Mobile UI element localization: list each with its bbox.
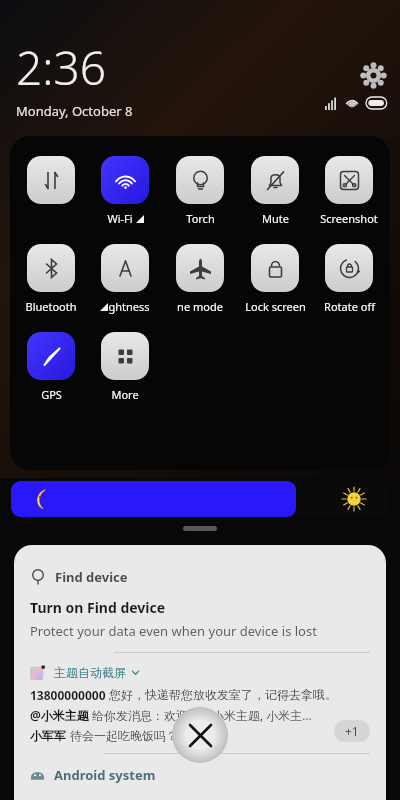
staticText: Turn on Find device <box>30 598 166 617</box>
staticText: 待会一起吃晚饭吗？ <box>70 728 178 743</box>
button[interactable]: Wi-Fi <box>101 156 149 204</box>
button[interactable]: 主题自动截屏 <box>30 665 370 680</box>
button[interactable]: Brightness <box>101 244 149 292</box>
staticText: Wi-Fi <box>107 211 133 226</box>
staticText: Rotate off <box>324 299 375 314</box>
staticText: Protect your data even when your device … <box>30 622 317 640</box>
staticText: 主题自动截屏 <box>54 665 126 680</box>
staticText: 小军军 <box>30 727 70 743</box>
staticText: 2:36 <box>16 36 107 99</box>
button[interactable]: Settings <box>358 60 388 90</box>
button[interactable]: Find device <box>30 568 370 586</box>
staticText: Mute <box>262 211 289 226</box>
staticText: Find device <box>55 568 128 586</box>
staticText: 您好，快递帮您放收发室了，记得去拿哦。 <box>109 687 337 702</box>
button[interactable]: More <box>101 332 149 380</box>
button[interactable]: Turn on Find device <box>30 598 370 640</box>
button[interactable]: Android system <box>30 766 370 784</box>
button[interactable]: Torch <box>176 156 224 204</box>
button[interactable]: Mobile data <box>27 156 75 204</box>
button[interactable]: Lock screen <box>251 244 299 292</box>
staticText: ghtness <box>108 299 150 314</box>
button[interactable]: +1 <box>334 720 370 742</box>
button[interactable]: Rotate off <box>325 244 373 292</box>
staticText: Torch <box>186 211 215 226</box>
staticText: Lock screen <box>245 299 306 314</box>
button[interactable]: Mute <box>251 156 299 204</box>
staticText: Monday, October 8 <box>16 102 133 120</box>
button[interactable]: Airplane mode <box>176 244 224 292</box>
staticText: 13800000000 <box>30 687 109 703</box>
button[interactable]: Bluetooth <box>27 244 75 292</box>
staticText: 给你发消息：欢迎关注小米主题, 小米主… <box>92 707 312 723</box>
staticText: @小米主题 <box>30 707 92 723</box>
staticText: +1 <box>345 723 359 739</box>
button[interactable]: GPS <box>27 332 75 380</box>
staticText: Screenshot <box>320 211 378 226</box>
button[interactable]: Close notifications <box>172 707 228 763</box>
staticText: ne mode <box>177 299 223 314</box>
staticText: Bluetooth <box>25 299 77 314</box>
button[interactable]: Screenshot <box>325 156 373 204</box>
staticText: More <box>111 387 139 402</box>
staticText: Android system <box>54 766 156 784</box>
button[interactable]: Brightness <box>11 481 389 517</box>
staticText: GPS <box>41 387 62 402</box>
